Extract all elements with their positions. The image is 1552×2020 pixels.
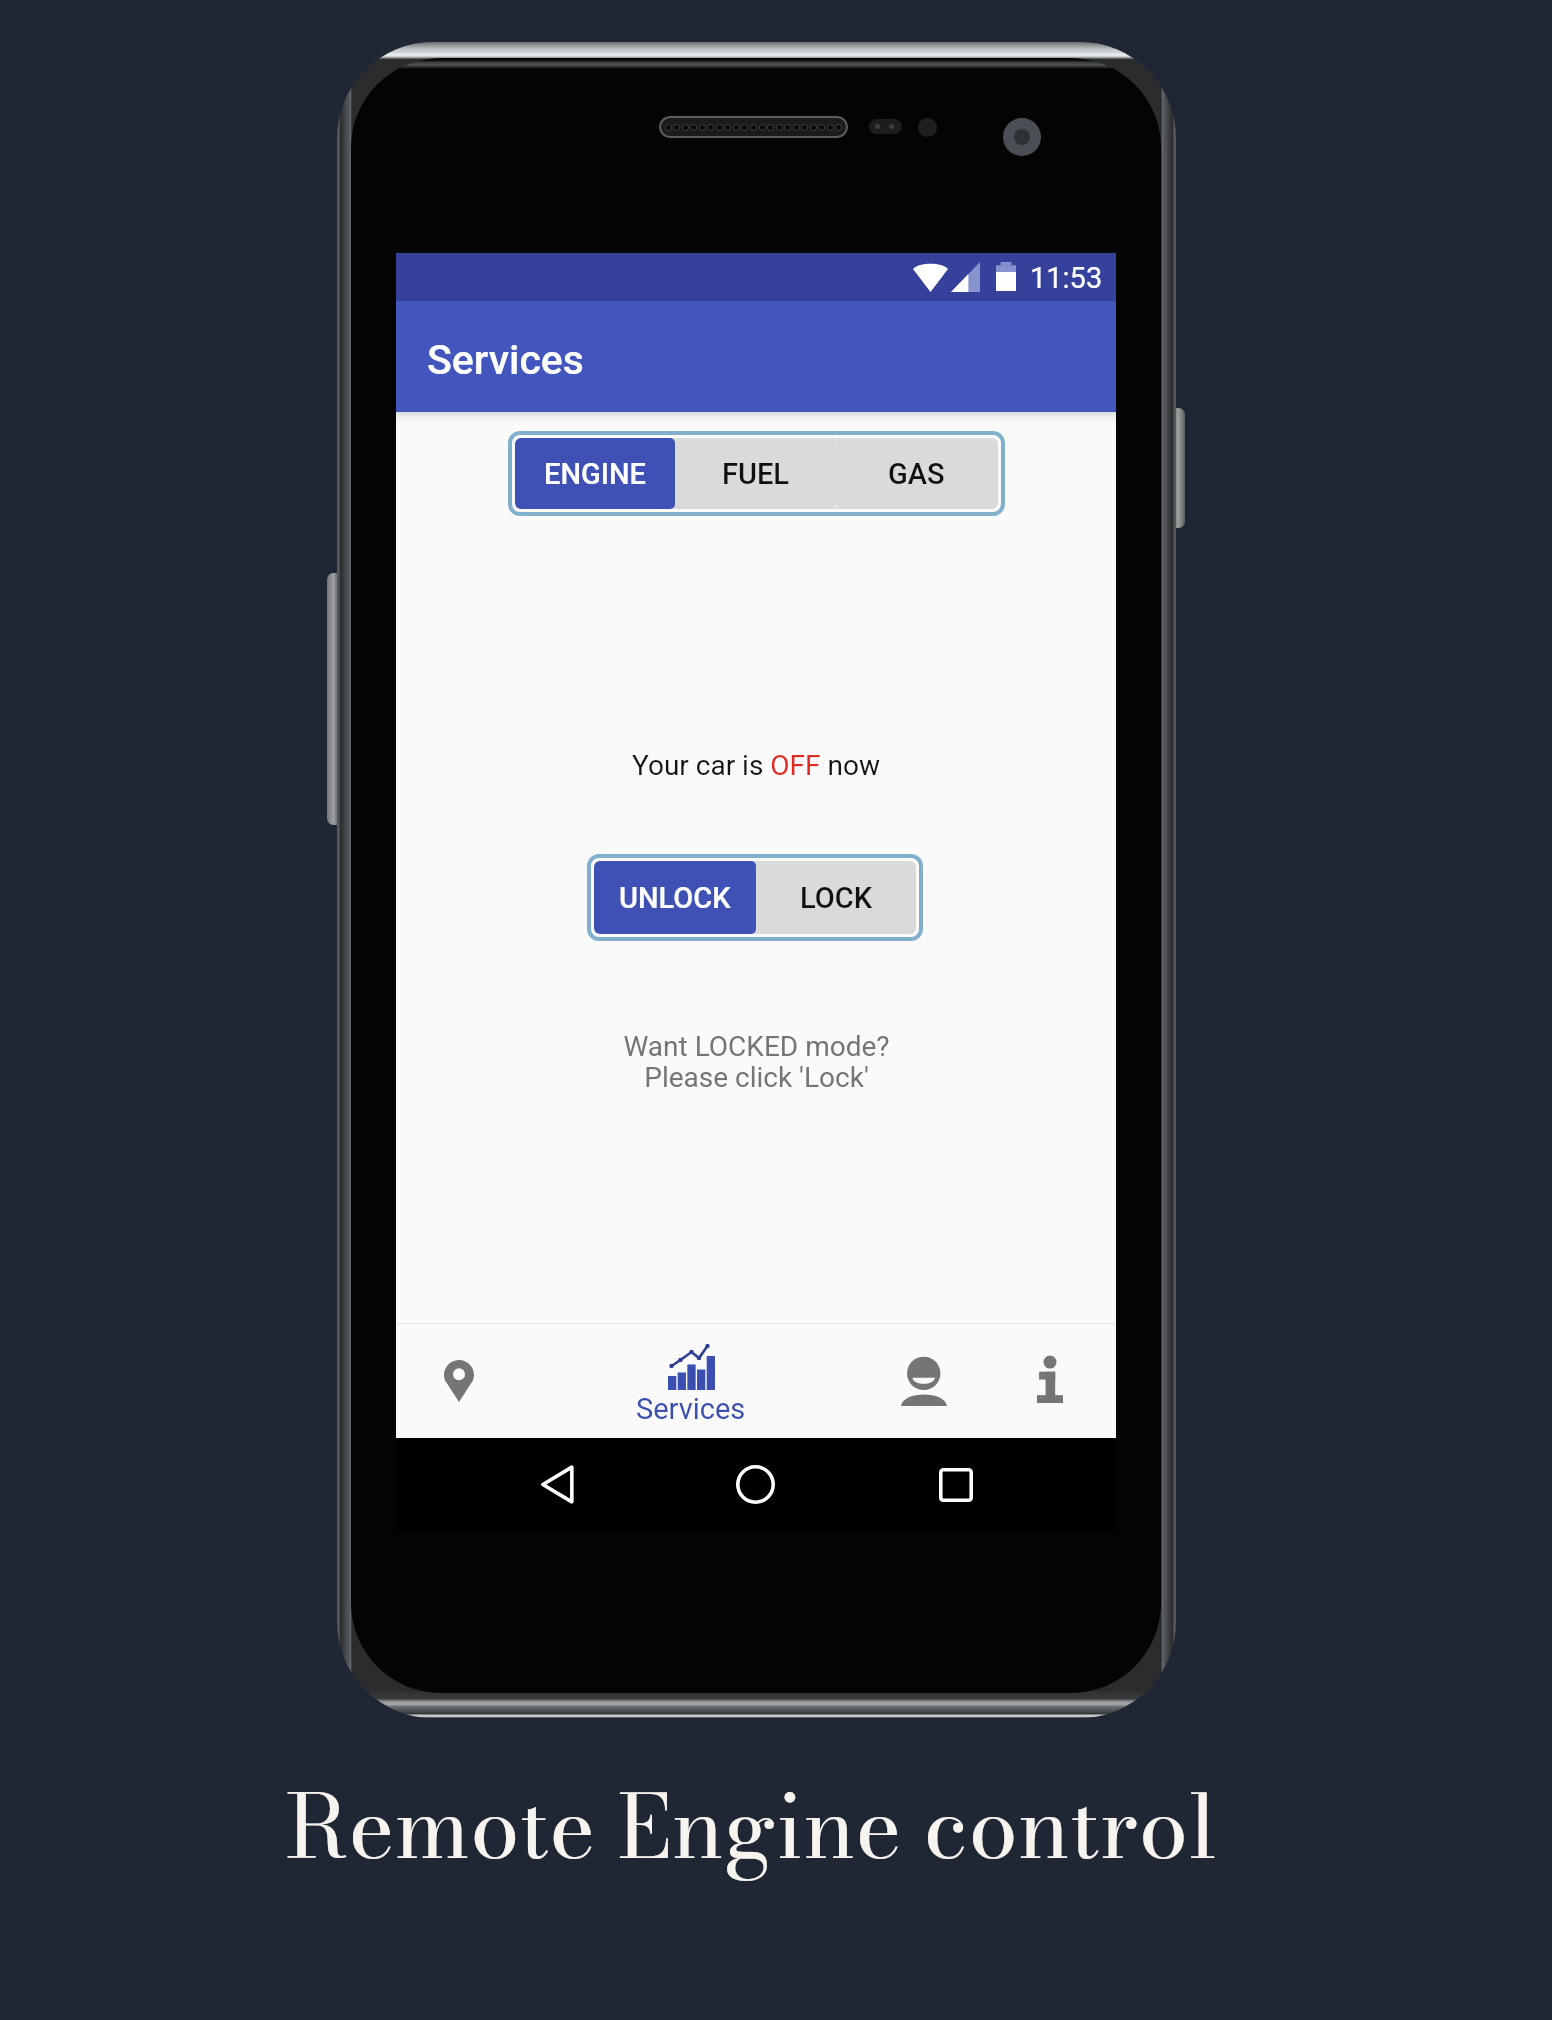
staticText: Your car is OFF now xyxy=(632,749,880,782)
staticText: Want LOCKED mode? Please click 'Lock' xyxy=(623,1030,890,1093)
button[interactable]: Back xyxy=(492,1438,622,1531)
button[interactable]: Location xyxy=(418,1338,500,1424)
staticText: FUEL xyxy=(722,457,789,491)
button[interactable]: Info xyxy=(1012,1336,1088,1424)
button[interactable]: Profile xyxy=(880,1334,968,1426)
staticText: ENGINE xyxy=(544,457,646,491)
staticText: Remote Engine control xyxy=(285,1759,1218,1893)
button[interactable]: Recents xyxy=(891,1438,1021,1531)
staticText: UNLOCK xyxy=(619,881,731,915)
button[interactable]: Services xyxy=(611,1330,771,1434)
button[interactable]: LOCK xyxy=(756,861,916,934)
button[interactable]: ENGINE xyxy=(515,438,675,509)
staticText: GAS xyxy=(888,457,945,491)
staticText: Services xyxy=(427,336,584,384)
button[interactable]: FUEL xyxy=(675,438,836,509)
button[interactable]: UNLOCK xyxy=(594,861,756,934)
button[interactable]: Home xyxy=(690,1438,820,1531)
staticText: LOCK xyxy=(800,881,872,915)
staticText: 11:53 xyxy=(1030,261,1103,295)
button[interactable]: GAS xyxy=(836,438,997,509)
staticText: Services xyxy=(636,1392,746,1426)
